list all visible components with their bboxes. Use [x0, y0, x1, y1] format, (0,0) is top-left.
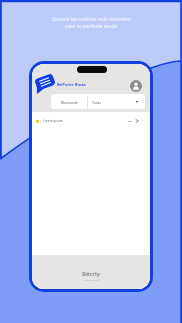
button[interactable]: Lorem ipsum	[32, 115, 150, 127]
staticText: para tu perfecta moda	[14, 23, 168, 30]
button[interactable]: Profile	[130, 80, 142, 92]
staticText: Conoce las noticias más recientes	[14, 16, 168, 23]
staticText: Todos los derechos	[83, 279, 100, 282]
staticText: Lorem ipsum	[43, 119, 63, 123]
staticText: Bérrly	[82, 270, 101, 278]
button[interactable]: Mostrando	[51, 94, 87, 109]
staticText: Mostrando	[61, 100, 78, 104]
staticText: BePorte Kiuta	[57, 82, 86, 88]
staticText: Todas	[92, 100, 102, 104]
button[interactable]: Todas	[88, 94, 145, 109]
